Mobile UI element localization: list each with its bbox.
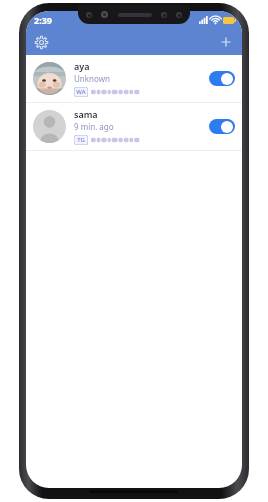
staticText: Unknown <box>74 73 110 84</box>
button[interactable]: Toggle enabled <box>209 71 235 86</box>
staticText: TG <box>77 136 85 144</box>
button[interactable]: Settings <box>31 32 51 52</box>
button[interactable]: Toggle enabled <box>209 119 235 134</box>
staticText: WA <box>76 88 86 96</box>
staticText: sama <box>74 108 98 120</box>
button[interactable]: sama <box>26 103 242 150</box>
button[interactable]: Add <box>216 32 236 52</box>
staticText: 2:39 <box>34 14 52 26</box>
staticText: aya <box>74 60 90 72</box>
staticText: 9 min. ago <box>74 121 114 132</box>
button[interactable]: aya <box>26 55 242 102</box>
